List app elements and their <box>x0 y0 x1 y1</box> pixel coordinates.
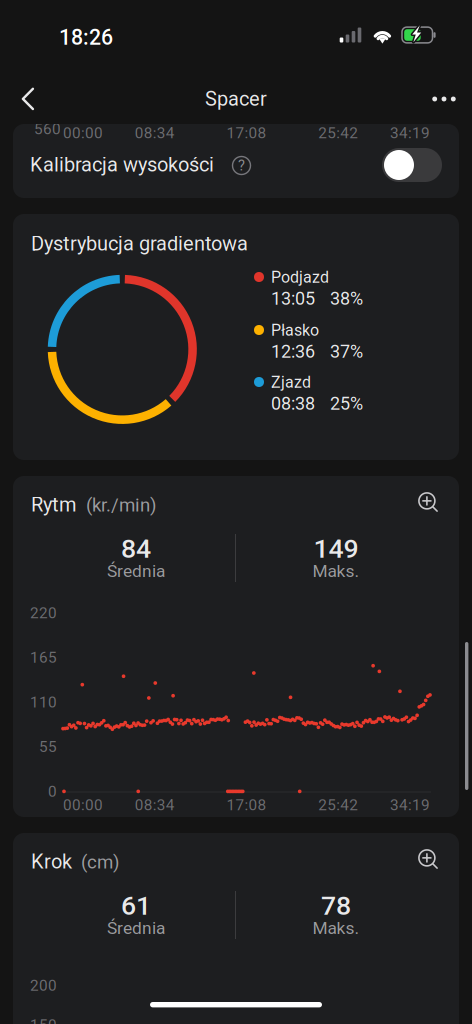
button[interactable]: Powiększ <box>408 839 448 879</box>
staticText: Dystrybucja gradientowa <box>31 232 248 255</box>
staticText: 149 <box>313 533 358 564</box>
staticText: 00:00 <box>63 796 103 814</box>
staticText: 38% <box>330 288 363 309</box>
staticText: Rytm <box>31 493 77 516</box>
staticText: Średnia <box>107 561 165 581</box>
staticText: 25:42 <box>318 796 358 814</box>
staticText: (kr./min) <box>86 494 156 516</box>
staticText: 61 <box>121 890 151 921</box>
staticText: ? <box>238 157 245 174</box>
staticText: 110 <box>30 693 57 711</box>
staticText: 18:26 <box>59 25 113 50</box>
staticText: 08:34 <box>135 124 175 142</box>
staticText: (cm) <box>81 851 119 873</box>
staticText: 12:36 <box>271 341 315 362</box>
staticText: 13:05 <box>271 288 315 309</box>
staticText: 00:00 <box>63 124 103 142</box>
staticText: 25:42 <box>318 124 358 142</box>
staticText: Spacer <box>205 87 267 111</box>
button[interactable]: Wstecz <box>6 77 50 121</box>
staticText: Maks. <box>312 918 359 938</box>
staticText: 37% <box>330 341 363 362</box>
staticText: 34:19 <box>390 796 430 814</box>
staticText: 17:08 <box>226 796 266 814</box>
staticText: 150 <box>30 1016 57 1024</box>
button[interactable]: Więcej <box>422 77 466 121</box>
staticText: 165 <box>30 649 57 667</box>
staticText: 560 <box>34 120 61 138</box>
staticText: 08:34 <box>135 796 175 814</box>
button[interactable]: Powiększ <box>408 482 448 522</box>
staticText: Podjazd <box>271 268 329 287</box>
staticText: 25% <box>330 393 363 414</box>
staticText: Płasko <box>271 321 319 340</box>
staticText: Kalibracja wysokości <box>30 153 214 176</box>
staticText: 200 <box>30 977 57 995</box>
staticText: Średnia <box>107 918 165 938</box>
staticText: 34:19 <box>390 124 430 142</box>
staticText: 78 <box>321 890 351 921</box>
staticText: 220 <box>30 604 57 622</box>
staticText: Krok <box>31 850 72 873</box>
staticText: 0 <box>48 782 57 800</box>
staticText: 17:08 <box>226 124 266 142</box>
staticText: Maks. <box>312 561 359 581</box>
staticText: 84 <box>121 533 151 564</box>
staticText: 08:38 <box>271 393 315 414</box>
staticText: 55 <box>39 738 57 756</box>
staticText: Zjazd <box>271 373 311 392</box>
